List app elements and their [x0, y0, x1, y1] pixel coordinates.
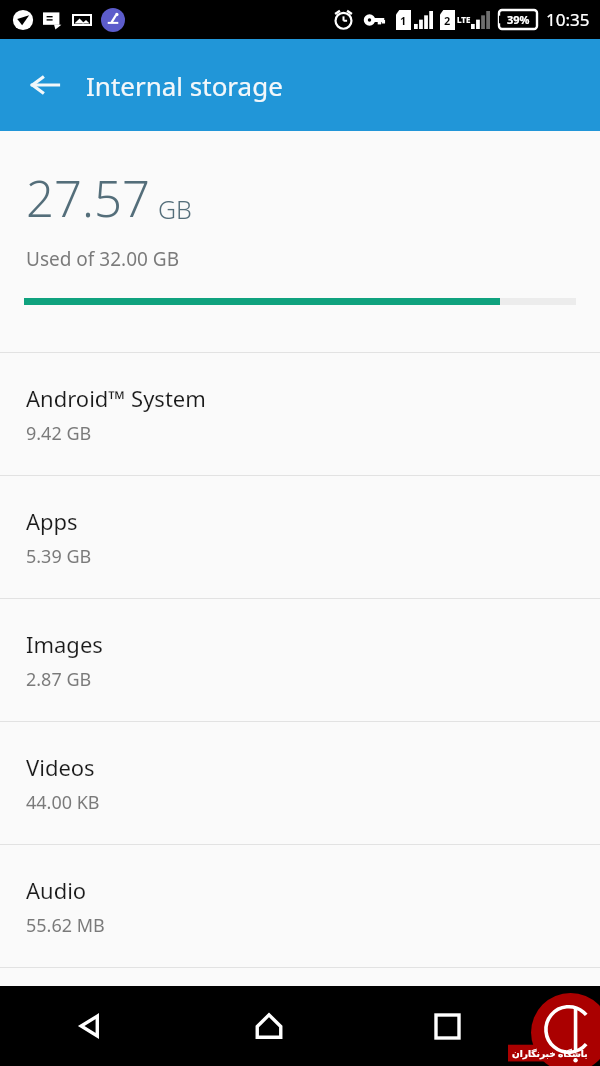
staticText: 5.39 GB — [26, 544, 92, 569]
staticText: Used of 32.00 GB — [26, 246, 179, 272]
staticText: Audio — [26, 875, 87, 905]
button[interactable]: Recent apps — [358, 986, 537, 1066]
staticText: LTE — [457, 14, 471, 25]
button[interactable]: Home — [179, 986, 358, 1066]
staticText: Images — [26, 629, 103, 659]
staticText: 2.87 GB — [26, 667, 92, 692]
staticText: 44.00 KB — [26, 790, 100, 815]
staticText: 55.62 MB — [26, 913, 105, 938]
button[interactable]: Images — [0, 599, 600, 721]
staticText: Apps — [26, 506, 78, 536]
staticText: 39% — [507, 12, 530, 27]
button[interactable]: Audio — [0, 845, 600, 967]
button[interactable]: Android™ System — [0, 353, 600, 475]
staticText: 2 — [444, 13, 451, 28]
staticText: 10:35 — [546, 8, 590, 31]
staticText: 9.42 GB — [26, 421, 92, 446]
staticText: GB — [158, 192, 192, 226]
button[interactable]: Apps — [0, 476, 600, 598]
staticText: Android™ System — [26, 383, 206, 413]
staticText: Videos — [26, 752, 95, 782]
staticText: باشگاه خبرنگاران — [512, 1047, 588, 1059]
staticText: 1 — [400, 13, 407, 28]
staticText: Internal storage — [86, 68, 283, 103]
button[interactable]: Videos — [0, 722, 600, 844]
button[interactable]: Back — [0, 986, 179, 1066]
staticText: 27.57 — [26, 165, 150, 232]
button[interactable]: Back — [14, 54, 76, 116]
